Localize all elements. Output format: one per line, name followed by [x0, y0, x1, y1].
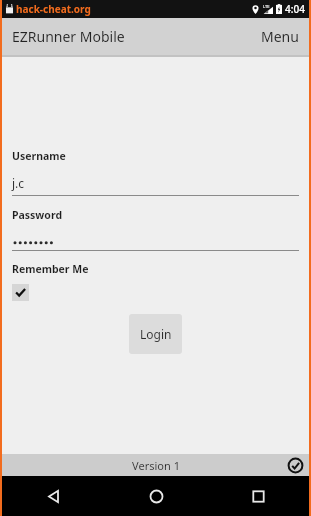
button[interactable]: Back: [2, 476, 105, 516]
button[interactable]: [12, 236, 299, 251]
staticText: Remember Me: [12, 262, 89, 276]
staticText: Version 1: [132, 458, 180, 473]
staticText: Menu: [261, 27, 299, 46]
staticText: hack-cheat.org: [16, 2, 91, 16]
staticText: Username: [12, 149, 66, 163]
button[interactable]: Remember Me checkbox: [12, 284, 29, 301]
button[interactable]: j.c: [12, 175, 299, 196]
button[interactable]: Home: [105, 476, 207, 516]
staticText: j.c: [12, 175, 25, 191]
button[interactable]: Menu: [251, 19, 309, 54]
button[interactable]: Login: [129, 314, 182, 354]
staticText: 4:04: [285, 2, 305, 16]
button[interactable]: Status OK: [287, 457, 303, 473]
staticText: EZRunner Mobile: [12, 27, 125, 46]
button[interactable]: Recent apps: [207, 476, 309, 516]
staticText: LTE: [263, 4, 270, 9]
staticText: Password: [12, 208, 63, 222]
staticText: Login: [140, 326, 172, 342]
